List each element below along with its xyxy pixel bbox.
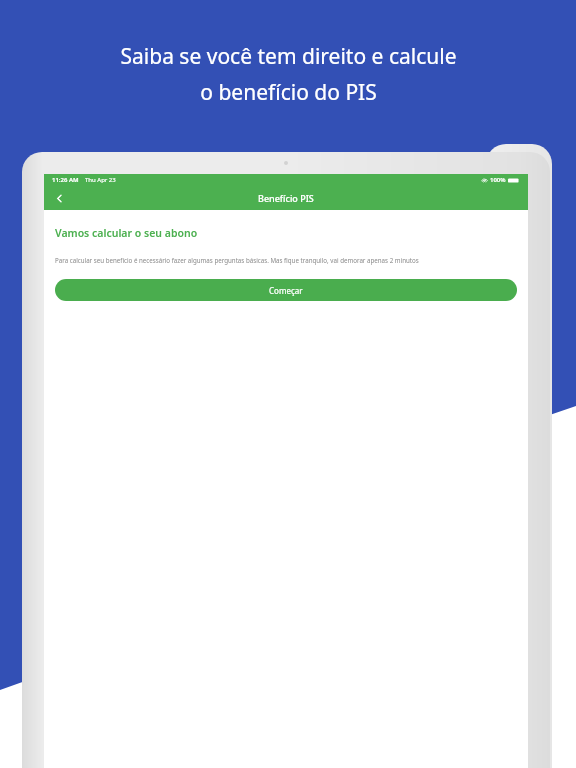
- staticText: Começar: [269, 285, 303, 296]
- button[interactable]: Começar: [55, 279, 517, 301]
- staticText: 11:26 AM: [52, 176, 79, 184]
- button[interactable]: Back: [44, 186, 74, 210]
- staticText: Thu Apr 23: [85, 176, 116, 184]
- staticText: 100%: [490, 176, 506, 184]
- staticText: Benefício PIS: [258, 192, 314, 204]
- staticText: Vamos calcular o seu abono: [55, 226, 198, 240]
- staticText: Saiba se você tem direito e calcule: [120, 42, 457, 71]
- staticText: Para calcular seu benefício é necessário…: [55, 256, 419, 264]
- staticText: o benefício do PIS: [200, 78, 377, 107]
